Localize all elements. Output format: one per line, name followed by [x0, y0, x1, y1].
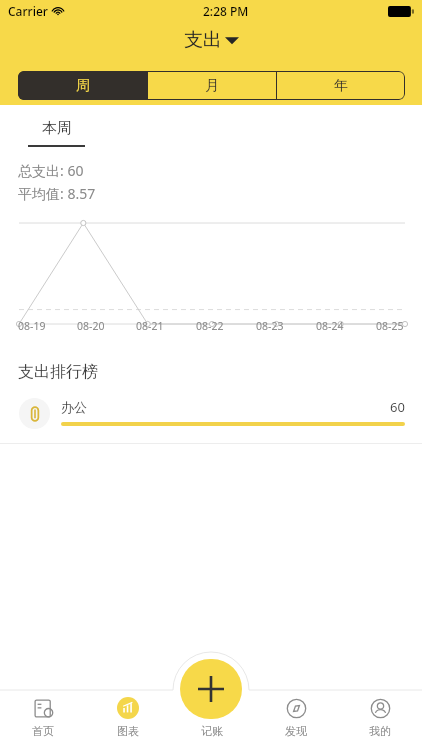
- staticText: 图表: [117, 724, 139, 738]
- staticText: 记账: [201, 724, 223, 738]
- button[interactable]: 年: [277, 71, 405, 100]
- staticText: 08-19: [18, 319, 46, 333]
- staticText: 周: [76, 77, 90, 95]
- staticText: 我的: [369, 724, 391, 738]
- staticText: 2:28 PM: [203, 3, 249, 19]
- button[interactable]: 图表: [85, 690, 170, 750]
- button[interactable]: 发现: [254, 690, 338, 750]
- staticText: 总支出: 60: [18, 161, 84, 180]
- button[interactable]: 记账: [170, 690, 254, 750]
- staticText: Carrier: [8, 3, 48, 19]
- button[interactable]: 我的: [338, 690, 422, 750]
- staticText: 08-24: [316, 319, 344, 333]
- staticText: 本周: [42, 119, 72, 138]
- staticText: 08-20: [77, 319, 105, 333]
- staticText: 年: [334, 77, 348, 95]
- staticText: 08-25: [376, 319, 404, 333]
- staticText: 首页: [32, 724, 54, 738]
- staticText: 支出排行榜: [18, 362, 98, 382]
- staticText: 08-21: [136, 319, 164, 333]
- staticText: 月: [205, 77, 219, 95]
- button[interactable]: Add record: [180, 659, 242, 719]
- staticText: 08-23: [256, 319, 284, 333]
- button[interactable]: 周: [18, 71, 147, 100]
- staticText: 办公: [61, 399, 87, 415]
- staticText: 发现: [285, 724, 307, 738]
- button[interactable]: 办公: [0, 398, 422, 444]
- staticText: 60: [390, 398, 405, 416]
- button[interactable]: 支出: [184, 28, 239, 52]
- button[interactable]: 首页: [0, 690, 85, 750]
- button[interactable]: 月: [148, 71, 276, 100]
- button[interactable]: 本周: [28, 119, 85, 147]
- staticText: 支出: [184, 28, 222, 52]
- staticText: 08-22: [196, 319, 224, 333]
- staticText: 平均值: 8.57: [18, 184, 96, 203]
